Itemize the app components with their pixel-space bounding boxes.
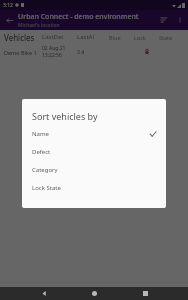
- staticText: Lock: [134, 34, 159, 41]
- staticText: Vehicles: [4, 32, 42, 43]
- staticText: Lock State: [32, 184, 157, 192]
- staticText: Blue: [109, 34, 134, 41]
- staticText: Demo Bike 1: [4, 49, 42, 56]
- staticText: Michael's location: [18, 22, 60, 29]
- button[interactable]: Lock State: [22, 179, 166, 197]
- button[interactable]: More options: [172, 12, 188, 28]
- button[interactable]: Recent apps: [138, 287, 152, 300]
- staticText: 3:12: [3, 2, 13, 9]
- button[interactable]: Home: [87, 287, 101, 300]
- staticText: Name: [32, 130, 149, 138]
- staticText: Category: [32, 166, 157, 174]
- staticText: Defect: [32, 148, 157, 156]
- button[interactable]: Back: [0, 11, 18, 29]
- button[interactable]: Category: [22, 161, 166, 179]
- staticText: LastAl: [77, 33, 109, 41]
- button[interactable]: Name: [22, 125, 166, 143]
- button[interactable]: Sort: [156, 12, 172, 28]
- staticText: Sort vehicles by: [32, 110, 98, 122]
- staticText: State: [159, 34, 184, 41]
- button[interactable]: Defect: [22, 143, 166, 161]
- staticText: 02 Aug 21: [42, 45, 66, 52]
- staticText: 13:22:56: [42, 52, 62, 59]
- staticText: 3 d: [77, 49, 109, 56]
- staticText: LastDet: [42, 33, 77, 41]
- staticText: Urban Connect - demo environment: [18, 12, 139, 22]
- button[interactable]: Back: [37, 287, 51, 300]
- button[interactable]: Demo Bike 1: [0, 44, 188, 60]
